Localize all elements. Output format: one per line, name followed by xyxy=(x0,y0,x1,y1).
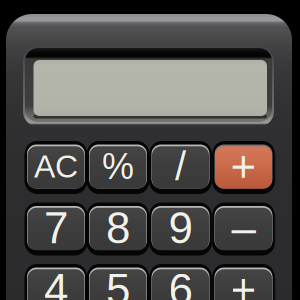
button[interactable]: + xyxy=(211,264,276,300)
staticText: AC xyxy=(34,149,78,184)
button[interactable]: 7 xyxy=(23,202,88,253)
staticText: + xyxy=(230,142,256,191)
staticText: 8 xyxy=(106,203,130,253)
button[interactable]: 4 xyxy=(23,264,88,300)
button[interactable]: % xyxy=(85,141,150,192)
button[interactable]: 9 xyxy=(148,202,213,253)
staticText: 5 xyxy=(106,265,130,300)
staticText: 9 xyxy=(168,203,192,253)
button[interactable]: + xyxy=(211,141,276,192)
button[interactable]: – xyxy=(211,202,276,253)
button[interactable]: 5 xyxy=(85,264,150,300)
staticText: 7 xyxy=(44,203,68,253)
staticText: 6 xyxy=(168,265,192,300)
button[interactable]: 6 xyxy=(148,264,213,300)
staticText: + xyxy=(230,265,256,300)
staticText: 4 xyxy=(44,265,68,300)
button[interactable]: AC xyxy=(23,141,88,192)
staticText: / xyxy=(175,144,186,189)
button[interactable]: / xyxy=(148,141,213,192)
staticText: – xyxy=(231,203,255,253)
staticText: % xyxy=(102,146,134,187)
button[interactable]: 8 xyxy=(85,202,150,253)
